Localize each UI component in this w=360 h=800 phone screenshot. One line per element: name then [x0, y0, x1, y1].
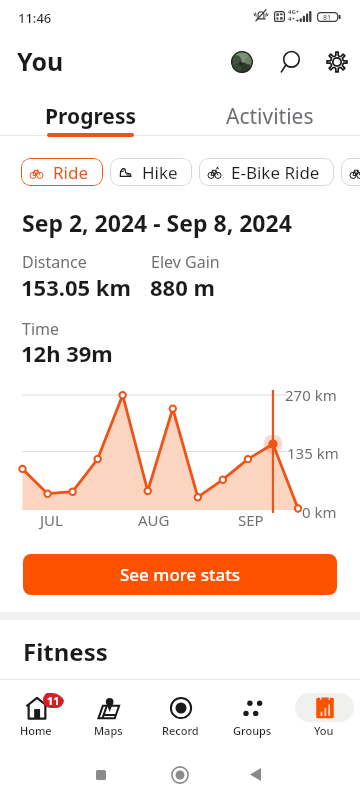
staticText: Time: [22, 318, 60, 340]
button[interactable]: 11: [0, 680, 72, 757]
button[interactable]: Progress: [0, 98, 180, 134]
staticText: AUG: [138, 510, 170, 530]
staticText: 12h 39m: [21, 338, 113, 368]
button[interactable]: Profile: [221, 41, 262, 82]
staticText: See more stats: [120, 563, 241, 586]
button[interactable]: Activities: [180, 98, 360, 134]
button[interactable]: Record: [144, 680, 216, 757]
button[interactable]: Maps: [72, 680, 144, 757]
staticText: Maps: [94, 723, 123, 738]
staticText: Hike: [142, 161, 178, 184]
button[interactable]: Hike: [110, 158, 192, 186]
staticText: 4G+: [288, 8, 300, 16]
staticText: 11: [47, 693, 60, 708]
button[interactable]: Recents: [79, 753, 123, 796]
button[interactable]: See more stats: [23, 554, 337, 595]
staticText: Elev Gain: [151, 251, 220, 273]
button[interactable]: Home: [158, 753, 202, 796]
staticText: Ride: [53, 161, 89, 184]
staticText: 81: [323, 13, 332, 23]
button[interactable]: Search: [270, 41, 311, 82]
button[interactable]: You: [288, 680, 360, 757]
staticText: E-Bike Ride: [231, 161, 320, 184]
button[interactable]: Back: [233, 753, 277, 796]
staticText: JUL: [40, 510, 63, 530]
button[interactable]: E-Bike Ride: [199, 158, 334, 186]
button[interactable]: Other: [341, 158, 360, 186]
staticText: Record: [162, 723, 199, 738]
staticText: 4+: [288, 15, 295, 23]
staticText: Fitness: [23, 635, 108, 668]
staticText: 11:46: [18, 9, 52, 27]
staticText: 153.05 km: [21, 272, 131, 302]
staticText: 0 km: [302, 502, 337, 522]
button[interactable]: Ride: [21, 158, 103, 186]
staticText: Groups: [233, 723, 272, 738]
staticText: 270 km: [285, 385, 337, 405]
staticText: 135 km: [287, 443, 339, 463]
staticText: Activities: [226, 102, 314, 131]
staticText: You: [17, 44, 64, 78]
staticText: Progress: [45, 102, 136, 131]
staticText: Sep 2, 2024 - Sep 8, 2024: [22, 207, 292, 238]
button[interactable]: Settings: [316, 41, 357, 82]
button[interactable]: Groups: [216, 680, 288, 757]
staticText: You: [314, 723, 334, 738]
staticText: SEP: [238, 510, 264, 530]
staticText: 880 m: [150, 272, 215, 302]
staticText: Distance: [22, 251, 87, 273]
staticText: Home: [20, 723, 52, 738]
